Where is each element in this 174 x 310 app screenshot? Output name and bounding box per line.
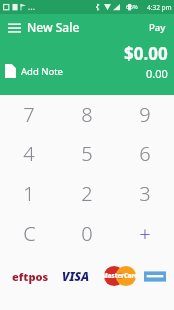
button[interactable]: 3 <box>116 173 174 213</box>
button[interactable]: Pay <box>141 14 174 40</box>
staticText: 1 <box>23 180 35 207</box>
staticText: MasterCard <box>102 272 139 280</box>
staticText: eftpos <box>12 269 49 284</box>
staticText: 4 <box>23 140 35 167</box>
staticText: 2 <box>81 180 93 207</box>
button[interactable]: Add Note <box>5 64 63 78</box>
staticText: 0 <box>81 220 93 247</box>
button[interactable]: 6 <box>116 134 174 173</box>
button[interactable]: C <box>0 213 58 253</box>
button[interactable]: 4 <box>0 134 58 173</box>
button[interactable]: 1 <box>0 173 58 213</box>
staticText: 6 <box>139 140 151 167</box>
staticText: 4:32 pm <box>147 3 172 12</box>
staticText: $0.00 <box>124 42 168 65</box>
button[interactable]: 8 <box>58 95 116 134</box>
staticText: 8 <box>81 101 93 128</box>
staticText: 7 <box>23 101 35 128</box>
button[interactable]: 0 <box>58 213 116 253</box>
staticText: Pay <box>149 21 166 34</box>
staticText: 0.00 <box>146 66 168 81</box>
staticText: New Sale <box>27 19 80 35</box>
staticText: C <box>23 220 36 247</box>
staticText: 9 <box>139 101 151 128</box>
button[interactable]: + <box>116 213 174 253</box>
staticText: 3 <box>139 180 151 207</box>
staticText: VISA <box>62 268 90 284</box>
button[interactable]: 9 <box>116 95 174 134</box>
staticText: 5 <box>81 140 93 167</box>
staticText: 66% <box>126 3 138 11</box>
button[interactable]: 7 <box>0 95 58 134</box>
button[interactable]: 5 <box>58 134 116 173</box>
button[interactable]: 2 <box>58 173 116 213</box>
staticText: Add Note <box>21 65 63 78</box>
staticText: + <box>139 220 151 247</box>
button[interactable]: Open navigation menu <box>4 17 24 37</box>
